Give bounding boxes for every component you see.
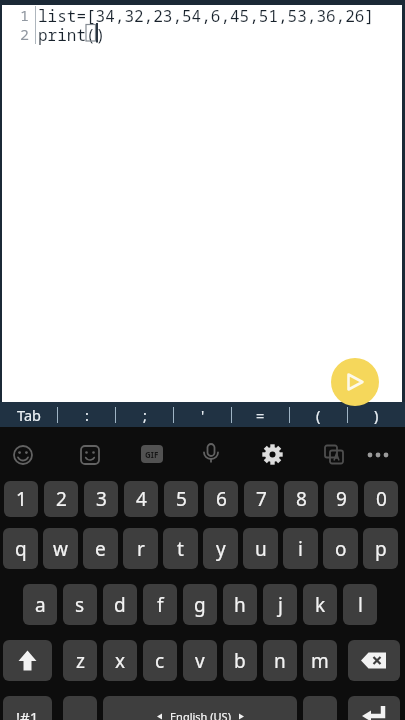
button[interactable]: c — [143, 640, 177, 681]
staticText: x — [115, 648, 126, 674]
staticText: g — [194, 592, 206, 618]
button[interactable]: 7 — [244, 481, 278, 517]
staticText: o — [335, 536, 347, 562]
button[interactable]: r — [123, 528, 158, 569]
button[interactable]: . — [303, 696, 337, 720]
button[interactable]: 1 — [4, 481, 38, 517]
button[interactable]: 2 — [44, 481, 78, 517]
staticText: q — [15, 536, 27, 562]
staticText: 1 — [16, 486, 27, 512]
staticText: d — [114, 592, 126, 618]
button[interactable] — [77, 442, 103, 468]
staticText: print() — [38, 24, 106, 46]
button[interactable]: GIF — [141, 445, 163, 463]
button[interactable] — [321, 442, 347, 468]
button[interactable]: , — [63, 696, 97, 720]
button[interactable]: t — [163, 528, 198, 569]
staticText: j — [278, 592, 283, 618]
button[interactable]: o — [323, 528, 358, 569]
button[interactable] — [348, 640, 400, 681]
staticText: 2 — [20, 24, 30, 44]
staticText: h — [234, 592, 246, 618]
button[interactable]: f — [143, 584, 177, 625]
button[interactable]: 6 — [204, 481, 238, 517]
staticText: b — [234, 648, 246, 674]
button[interactable]: 5 — [164, 481, 198, 517]
button[interactable]: b — [223, 640, 257, 681]
button[interactable] — [3, 640, 52, 681]
staticText: c — [155, 648, 165, 674]
button[interactable]: ; — [116, 402, 173, 427]
button[interactable] — [331, 358, 379, 406]
button[interactable]: x — [103, 640, 137, 681]
button[interactable]: m — [303, 640, 337, 681]
button[interactable] — [10, 442, 36, 468]
button[interactable]: = — [232, 402, 289, 427]
button[interactable]: Tab — [0, 402, 57, 427]
button[interactable]: u — [243, 528, 278, 569]
staticText: p — [375, 536, 387, 562]
staticText: !#1 — [16, 707, 39, 720]
button[interactable]: 9 — [324, 481, 358, 517]
button[interactable]: g — [183, 584, 217, 625]
button[interactable]: ) — [348, 402, 405, 427]
button[interactable]: !#1 — [3, 696, 52, 720]
button[interactable]: English (US) — [103, 696, 297, 720]
button[interactable] — [198, 441, 224, 467]
button[interactable]: d — [103, 584, 137, 625]
staticText: u — [255, 536, 267, 562]
staticText: ; — [143, 405, 147, 425]
button[interactable]: 8 — [284, 481, 318, 517]
staticText: 0 — [376, 486, 387, 512]
button[interactable]: ' — [174, 402, 231, 427]
staticText: 8 — [296, 486, 307, 512]
staticText: ) — [374, 405, 379, 425]
button[interactable] — [365, 448, 393, 462]
staticText: w — [53, 536, 68, 562]
staticText: ' — [201, 405, 205, 425]
button[interactable]: : — [58, 402, 115, 427]
staticText: f — [157, 592, 164, 618]
staticText: English (US) — [170, 709, 231, 720]
staticText: 1 — [20, 5, 30, 25]
staticText: i — [298, 536, 303, 562]
button[interactable]: z — [63, 640, 97, 681]
button[interactable]: l — [343, 584, 377, 625]
staticText: : — [85, 405, 89, 425]
staticText: 6 — [216, 486, 227, 512]
button[interactable]: k — [303, 584, 337, 625]
button[interactable]: s — [63, 584, 97, 625]
button[interactable]: n — [263, 640, 297, 681]
button[interactable] — [259, 441, 286, 468]
button[interactable]: w — [43, 528, 78, 569]
staticText: 2 — [56, 486, 67, 512]
staticText: 5 — [176, 486, 187, 512]
staticText: r — [137, 536, 145, 562]
staticText: v — [195, 648, 205, 674]
button[interactable]: 3 — [84, 481, 118, 517]
staticText: list=[34,32,23,54,6,45,51,53,36,26] — [38, 5, 375, 27]
staticText: l — [358, 592, 363, 618]
button[interactable]: h — [223, 584, 257, 625]
staticText: ( — [316, 405, 321, 425]
staticText: s — [75, 592, 85, 618]
staticText: = — [256, 405, 265, 425]
staticText: t — [177, 536, 184, 562]
staticText: 3 — [96, 486, 107, 512]
button[interactable] — [348, 696, 400, 720]
button[interactable]: a — [23, 584, 57, 625]
staticText: 9 — [336, 486, 347, 512]
button[interactable]: 4 — [124, 481, 158, 517]
button[interactable]: e — [83, 528, 118, 569]
button[interactable]: q — [3, 528, 38, 569]
button[interactable]: v — [183, 640, 217, 681]
button[interactable]: p — [363, 528, 398, 569]
button[interactable]: j — [263, 584, 297, 625]
staticText: y — [216, 536, 226, 562]
button[interactable]: ( — [290, 402, 347, 427]
button[interactable]: y — [203, 528, 238, 569]
button[interactable]: 0 — [364, 481, 398, 517]
button[interactable]: i — [283, 528, 318, 569]
